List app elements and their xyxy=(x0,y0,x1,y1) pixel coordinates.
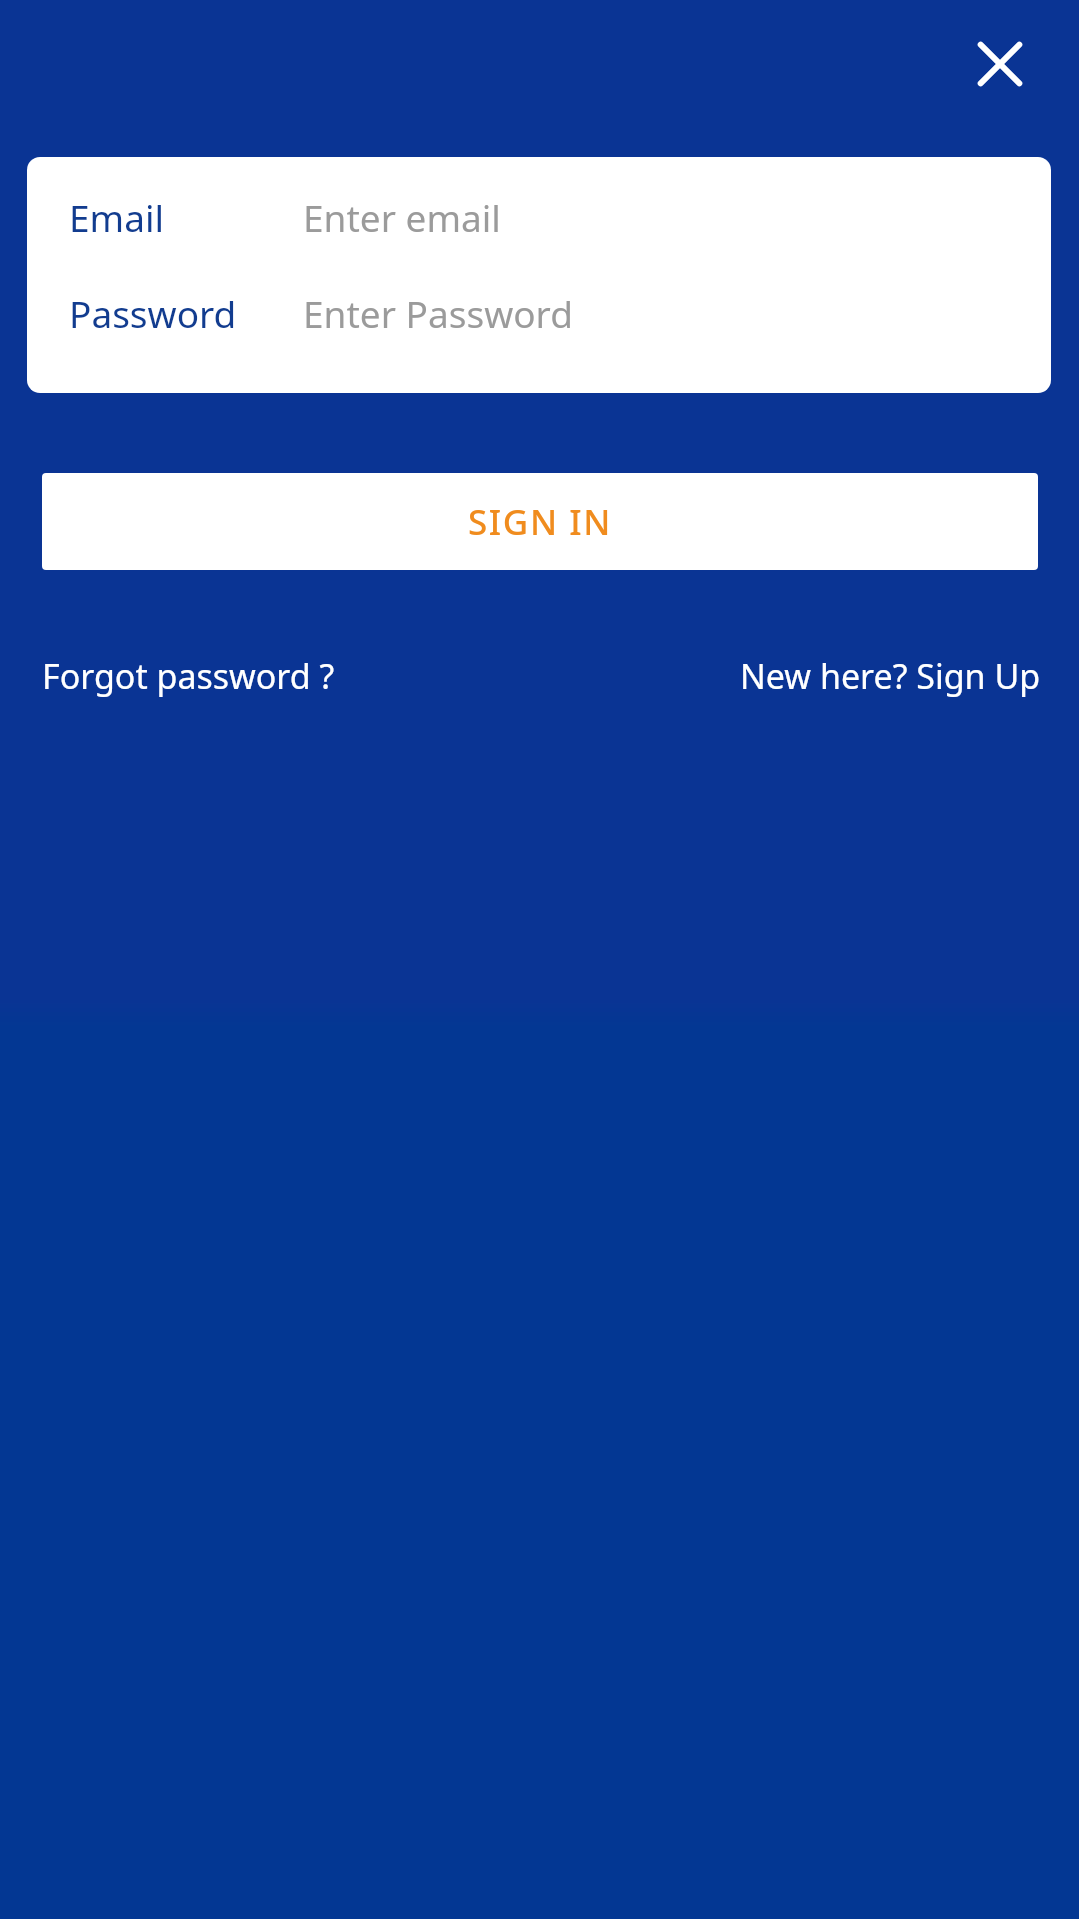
button[interactable]: Email xyxy=(27,169,1051,265)
staticText: Forgot password ? xyxy=(42,653,335,699)
button[interactable]: Forgot password ? xyxy=(40,649,337,703)
staticText: Password xyxy=(69,288,237,338)
button[interactable]: SIGN IN xyxy=(42,473,1038,570)
staticText: SIGN IN xyxy=(468,498,613,546)
staticText: Enter email xyxy=(303,192,501,242)
staticText: New here? Sign Up xyxy=(740,653,1041,699)
button[interactable]: New here? Sign Up xyxy=(738,649,1043,703)
button[interactable]: Close xyxy=(969,33,1031,95)
staticText: Enter Password xyxy=(303,288,573,338)
staticText: Email xyxy=(69,192,165,242)
button[interactable]: Password xyxy=(27,265,1051,361)
